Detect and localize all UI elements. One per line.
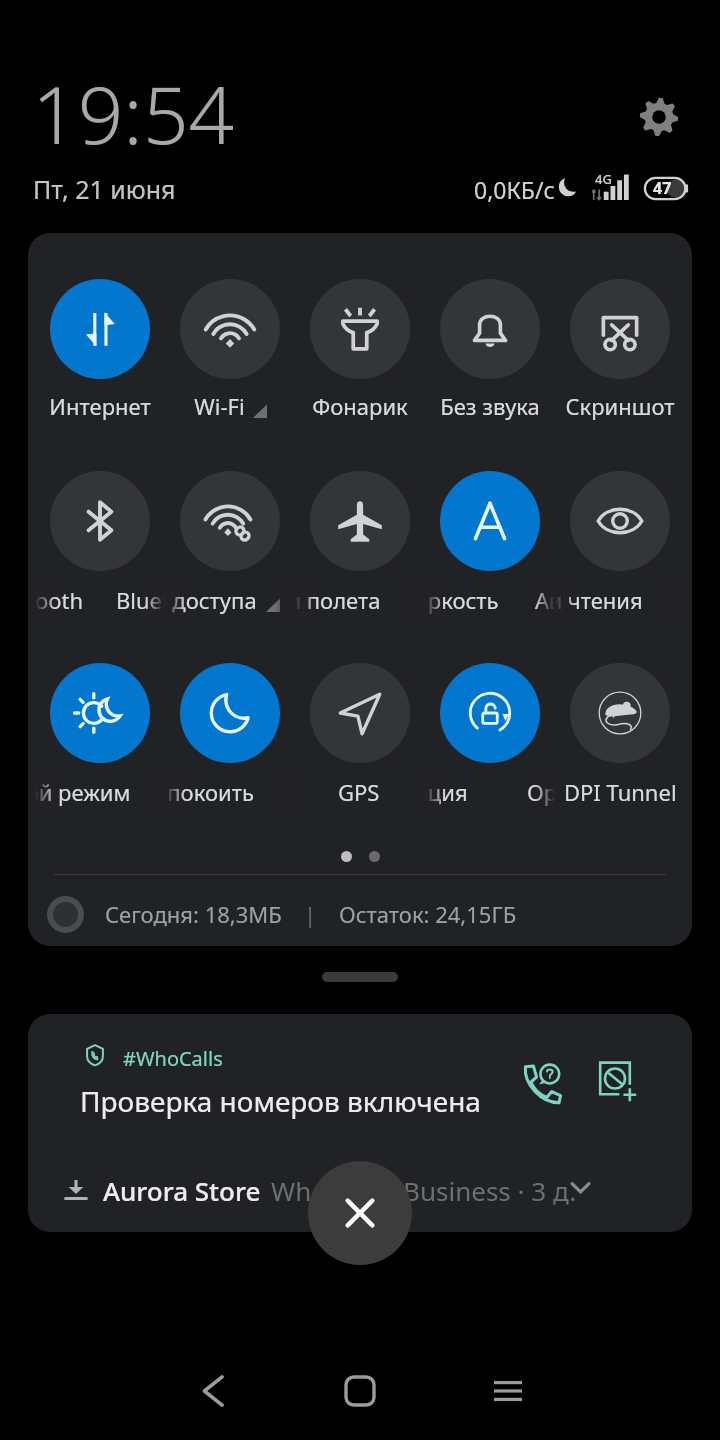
staticText: Автояркость — [535, 585, 555, 615]
button[interactable]: Фонарик — [295, 279, 425, 439]
button[interactable] — [295, 471, 425, 631]
button[interactable] — [35, 663, 165, 823]
staticText: Автояркость — [425, 585, 499, 615]
staticText: 0,0КБ/с — [474, 174, 555, 205]
staticText: Проверка номеров включена — [80, 1082, 481, 1120]
staticText: 19:54 — [32, 58, 235, 167]
button[interactable]: Back — [178, 1356, 248, 1426]
staticText: Bluetooth — [116, 585, 165, 615]
button[interactable]: Интернет — [35, 279, 165, 439]
staticText: #WhoCalls — [123, 1045, 223, 1072]
button[interactable]: Home — [325, 1356, 395, 1426]
button[interactable] — [35, 471, 165, 631]
staticText: Без звука — [440, 391, 540, 421]
staticText: Bluetooth — [35, 585, 84, 615]
staticText: Интернет — [49, 391, 151, 421]
staticText: WhatsApp Business · 3 д. — [271, 1173, 577, 1208]
button[interactable] — [165, 663, 295, 823]
staticText: Ориентация — [527, 777, 555, 807]
staticText: 4G — [595, 170, 612, 188]
staticText: DPI Tunnel — [564, 777, 677, 807]
staticText: Wi-Fi — [194, 391, 245, 421]
button[interactable] — [425, 663, 555, 823]
staticText: Фонарик — [312, 391, 408, 421]
staticText: GPS — [338, 777, 380, 807]
staticText: | — [304, 899, 317, 929]
staticText: Сегодня: 18,3МБ — [105, 899, 282, 929]
button[interactable]: Без звука — [425, 279, 555, 439]
staticText: Остаток: 24,15ГБ — [339, 899, 517, 929]
staticText: Режим полета — [295, 585, 381, 615]
button[interactable]: Recent apps — [473, 1356, 543, 1426]
staticText: Aurora Store — [103, 1173, 261, 1208]
staticText: Режим чтения — [555, 585, 643, 615]
button[interactable]: Unknown caller — [505, 1044, 581, 1120]
button[interactable]: #WhoCalls — [28, 1014, 692, 1232]
staticText: 47 — [653, 177, 672, 199]
staticText: Ночной режим — [35, 777, 131, 807]
button[interactable] — [555, 663, 685, 823]
button[interactable]: Скриншот — [555, 279, 685, 439]
staticText: Скриншот — [565, 391, 675, 421]
staticText: Пт, 21 июня — [33, 172, 176, 206]
button[interactable]: Block number — [579, 1044, 655, 1120]
staticText: Не беспокоить — [165, 777, 254, 807]
button[interactable] — [425, 471, 555, 631]
button[interactable] — [165, 471, 295, 631]
staticText: Точка доступа — [165, 585, 257, 615]
button[interactable] — [295, 663, 425, 823]
button[interactable]: Clear all notifications — [308, 1161, 412, 1265]
button[interactable]: Settings — [630, 88, 688, 146]
staticText: Ориентация — [425, 777, 468, 807]
button[interactable]: Wi-Fi — [165, 279, 295, 439]
button[interactable] — [555, 471, 685, 631]
